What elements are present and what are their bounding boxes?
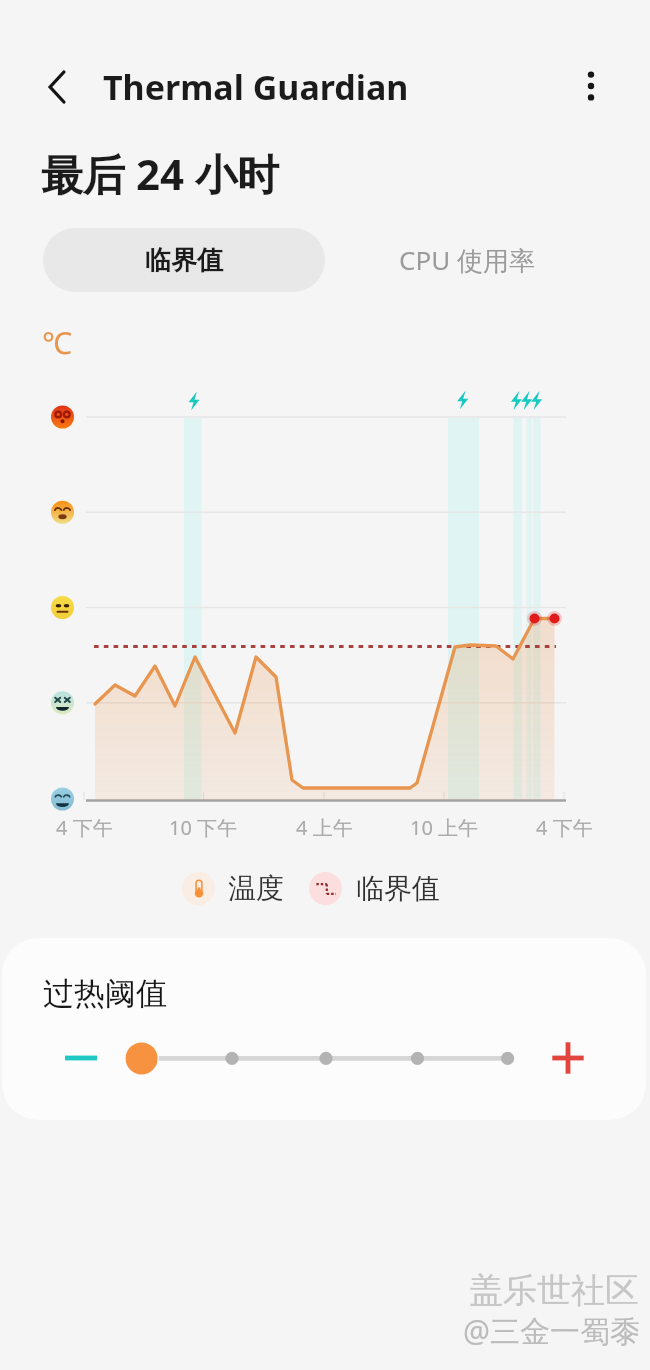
staticText: 4 上午: [296, 814, 353, 841]
button[interactable]: 临界值: [43, 228, 325, 292]
staticText: 10 上午: [410, 814, 479, 841]
staticText: CPU 使用率: [399, 242, 535, 278]
button[interactable]: Back: [28, 58, 85, 115]
staticText: 盖乐世社区: [469, 1269, 639, 1312]
staticText: 临界值: [356, 871, 440, 906]
staticText: 4 下午: [56, 814, 113, 841]
button[interactable]: CPU 使用率: [325, 228, 609, 292]
button[interactable]: Increase threshold: [542, 1036, 594, 1080]
staticText: ℃: [42, 322, 72, 363]
button[interactable]: Decrease threshold: [55, 1036, 107, 1080]
button[interactable]: More options: [562, 57, 619, 114]
button[interactable]: Temperature: [182, 872, 215, 905]
staticText: 4 下午: [536, 814, 593, 841]
staticText: 过热阈值: [43, 974, 167, 1013]
staticText: 温度: [228, 871, 284, 906]
button[interactable]: Threshold: [309, 872, 342, 905]
staticText: Thermal Guardian: [103, 64, 409, 110]
staticText: 临界值: [145, 244, 223, 277]
staticText: 10 下午: [169, 814, 238, 841]
staticText: 最后 24 小时: [41, 145, 279, 202]
staticText: @三金一蜀黍: [463, 1310, 640, 1351]
